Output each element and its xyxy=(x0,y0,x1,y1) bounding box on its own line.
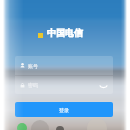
button[interactable]: 账号 xyxy=(15,56,113,75)
button[interactable]: Show password xyxy=(98,80,109,91)
button[interactable]: 密码 xyxy=(15,76,113,94)
staticText: 中国电信 xyxy=(47,27,83,38)
button[interactable]: 登录 xyxy=(15,102,113,117)
staticText: 账号 xyxy=(28,63,38,69)
staticText: 登录 xyxy=(59,107,69,113)
staticText: 密码 xyxy=(28,82,38,88)
